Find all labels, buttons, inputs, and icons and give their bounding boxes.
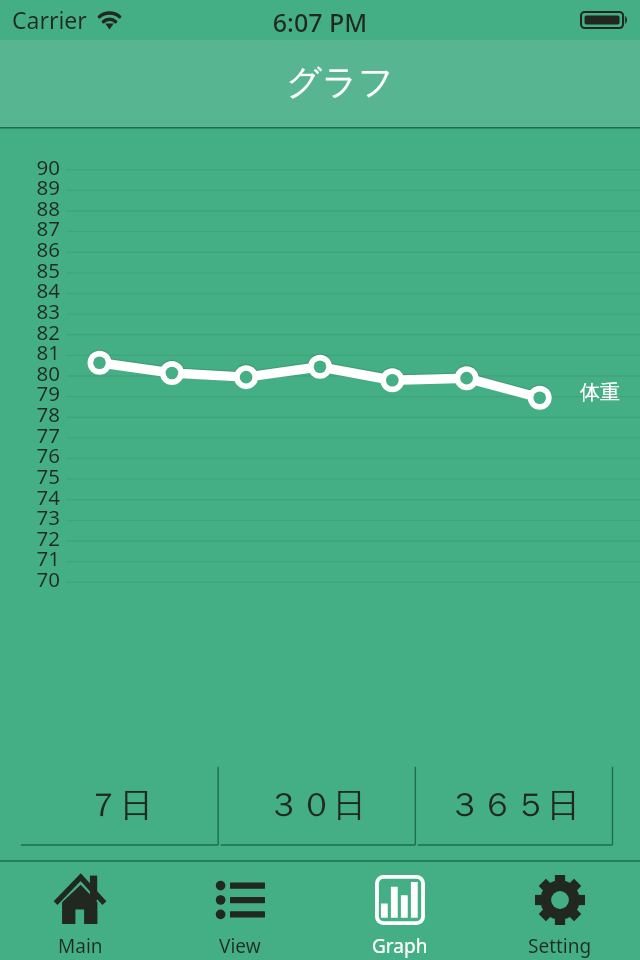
staticText: 6:07 PM xyxy=(0,5,640,39)
staticText: 76 xyxy=(30,441,60,469)
staticText: 85 xyxy=(30,256,60,284)
staticText: 74 xyxy=(30,483,60,511)
staticText: Setting xyxy=(528,933,592,959)
staticText: 72 xyxy=(30,524,60,552)
button[interactable]: View xyxy=(160,861,320,960)
staticText: 71 xyxy=(30,544,60,572)
staticText: 87 xyxy=(30,214,60,242)
staticText: グラフ xyxy=(20,60,640,104)
staticText: 84 xyxy=(30,276,60,304)
staticText: 79 xyxy=(30,379,60,407)
staticText: 75 xyxy=(30,462,60,490)
staticText: 81 xyxy=(30,338,60,366)
staticText: 70 xyxy=(30,565,60,593)
staticText: Carrier xyxy=(12,4,87,35)
button[interactable]: Main xyxy=(0,861,160,960)
staticText: 88 xyxy=(30,194,60,222)
staticText: View xyxy=(219,933,261,959)
staticText: 73 xyxy=(30,503,60,531)
staticText: 83 xyxy=(30,297,60,325)
staticText: 80 xyxy=(30,359,60,387)
button[interactable]: Setting xyxy=(480,861,640,960)
button[interactable]: ３６５日 xyxy=(415,766,612,845)
staticText: 体重 xyxy=(580,380,620,405)
staticText: ３６５日 xyxy=(448,784,580,826)
staticText: 78 xyxy=(30,400,60,428)
staticText: 89 xyxy=(30,173,60,201)
staticText: ３０日 xyxy=(267,784,366,826)
staticText: ７日 xyxy=(87,784,153,826)
staticText: Main xyxy=(58,933,103,959)
staticText: 77 xyxy=(30,421,60,449)
button[interactable]: ７日 xyxy=(21,766,218,845)
button[interactable]: Graph xyxy=(320,861,480,960)
button[interactable]: ３０日 xyxy=(218,766,415,845)
staticText: Graph xyxy=(372,933,428,959)
staticText: 86 xyxy=(30,235,60,263)
staticText: 82 xyxy=(30,318,60,346)
staticText: 90 xyxy=(30,153,60,181)
